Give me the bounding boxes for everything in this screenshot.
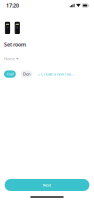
staticText: Home [4, 56, 15, 61]
staticText: 17:20 [6, 2, 19, 9]
staticText: Next [42, 182, 51, 188]
button[interactable]: Hall [4, 70, 16, 78]
button[interactable]: Next [5, 179, 89, 191]
button[interactable]: Den [21, 70, 32, 78]
staticText: Den [23, 71, 30, 77]
button[interactable]: + Create a new room [37, 71, 74, 77]
staticText: + Create a new room [38, 71, 74, 77]
button[interactable]: Home [0, 56, 94, 61]
staticText: Hall [6, 71, 13, 77]
staticText: Set room [4, 41, 26, 48]
